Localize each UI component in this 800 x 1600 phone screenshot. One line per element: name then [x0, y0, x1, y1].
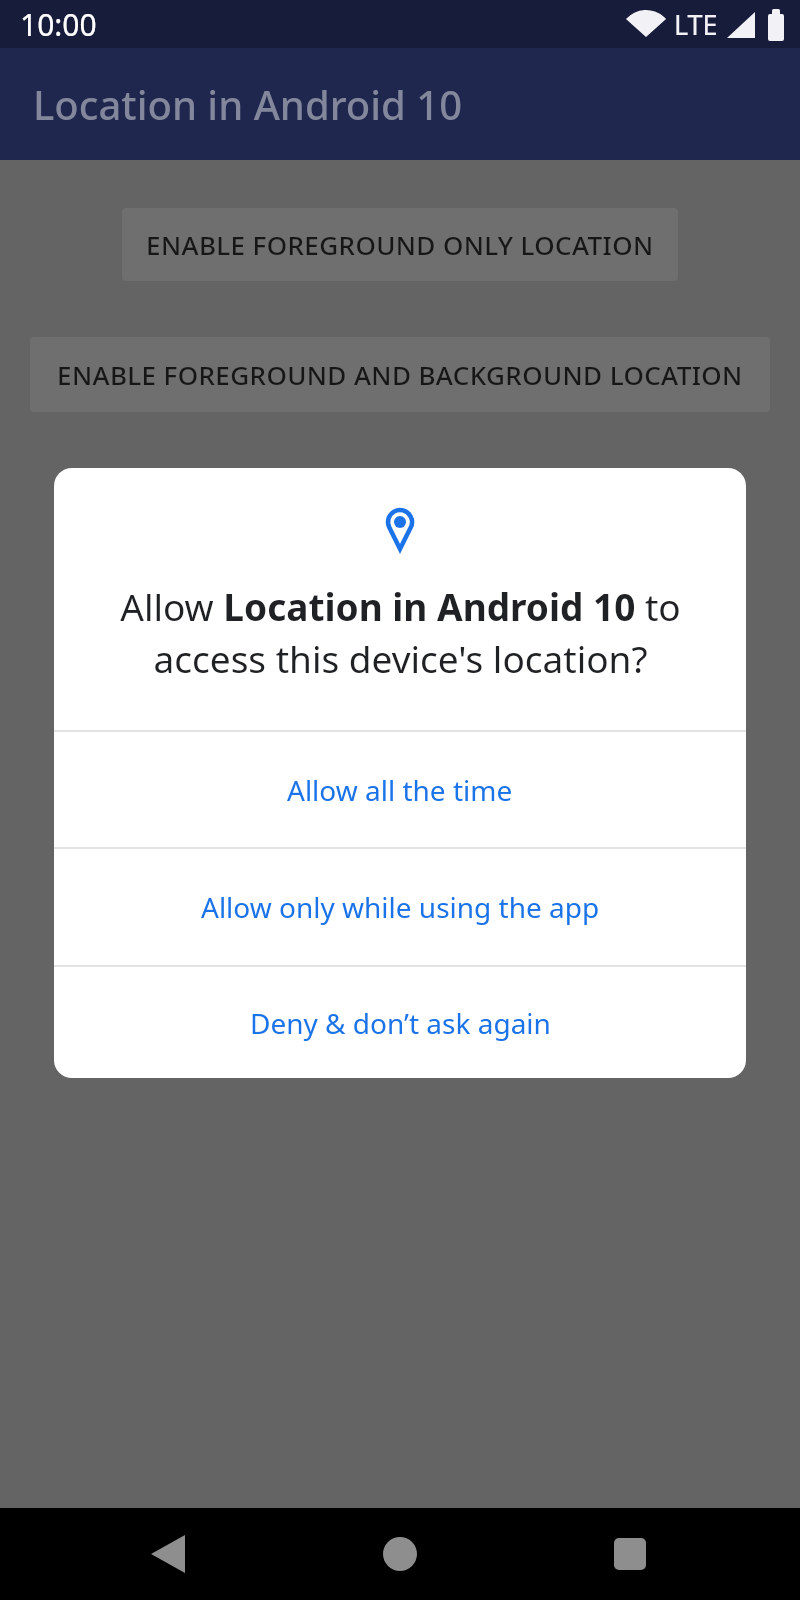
staticText: Deny & don’t ask again — [250, 1004, 551, 1042]
button[interactable]: ENABLE FOREGROUND AND BACKGROUND LOCATIO… — [30, 337, 770, 412]
button[interactable] — [600, 1524, 660, 1584]
staticText: 10:00 — [20, 4, 97, 45]
button[interactable]: ENABLE FOREGROUND ONLY LOCATION — [122, 208, 678, 281]
staticText: ENABLE FOREGROUND ONLY LOCATION — [146, 227, 654, 262]
button[interactable]: Allow all the time — [54, 732, 746, 847]
staticText: Location in Android 10 — [33, 77, 463, 131]
button[interactable]: Allow only while using the app — [54, 849, 746, 965]
button[interactable] — [370, 1524, 430, 1584]
staticText: Allow Location in Android 10 to access t… — [120, 581, 681, 684]
button[interactable] — [138, 1524, 198, 1584]
staticText: LTE — [674, 6, 718, 43]
staticText: Allow all the time — [287, 771, 513, 809]
button[interactable]: Deny & don’t ask again — [54, 967, 746, 1078]
staticText: ENABLE FOREGROUND AND BACKGROUND LOCATIO… — [57, 357, 743, 392]
staticText: Allow only while using the app — [201, 888, 600, 926]
